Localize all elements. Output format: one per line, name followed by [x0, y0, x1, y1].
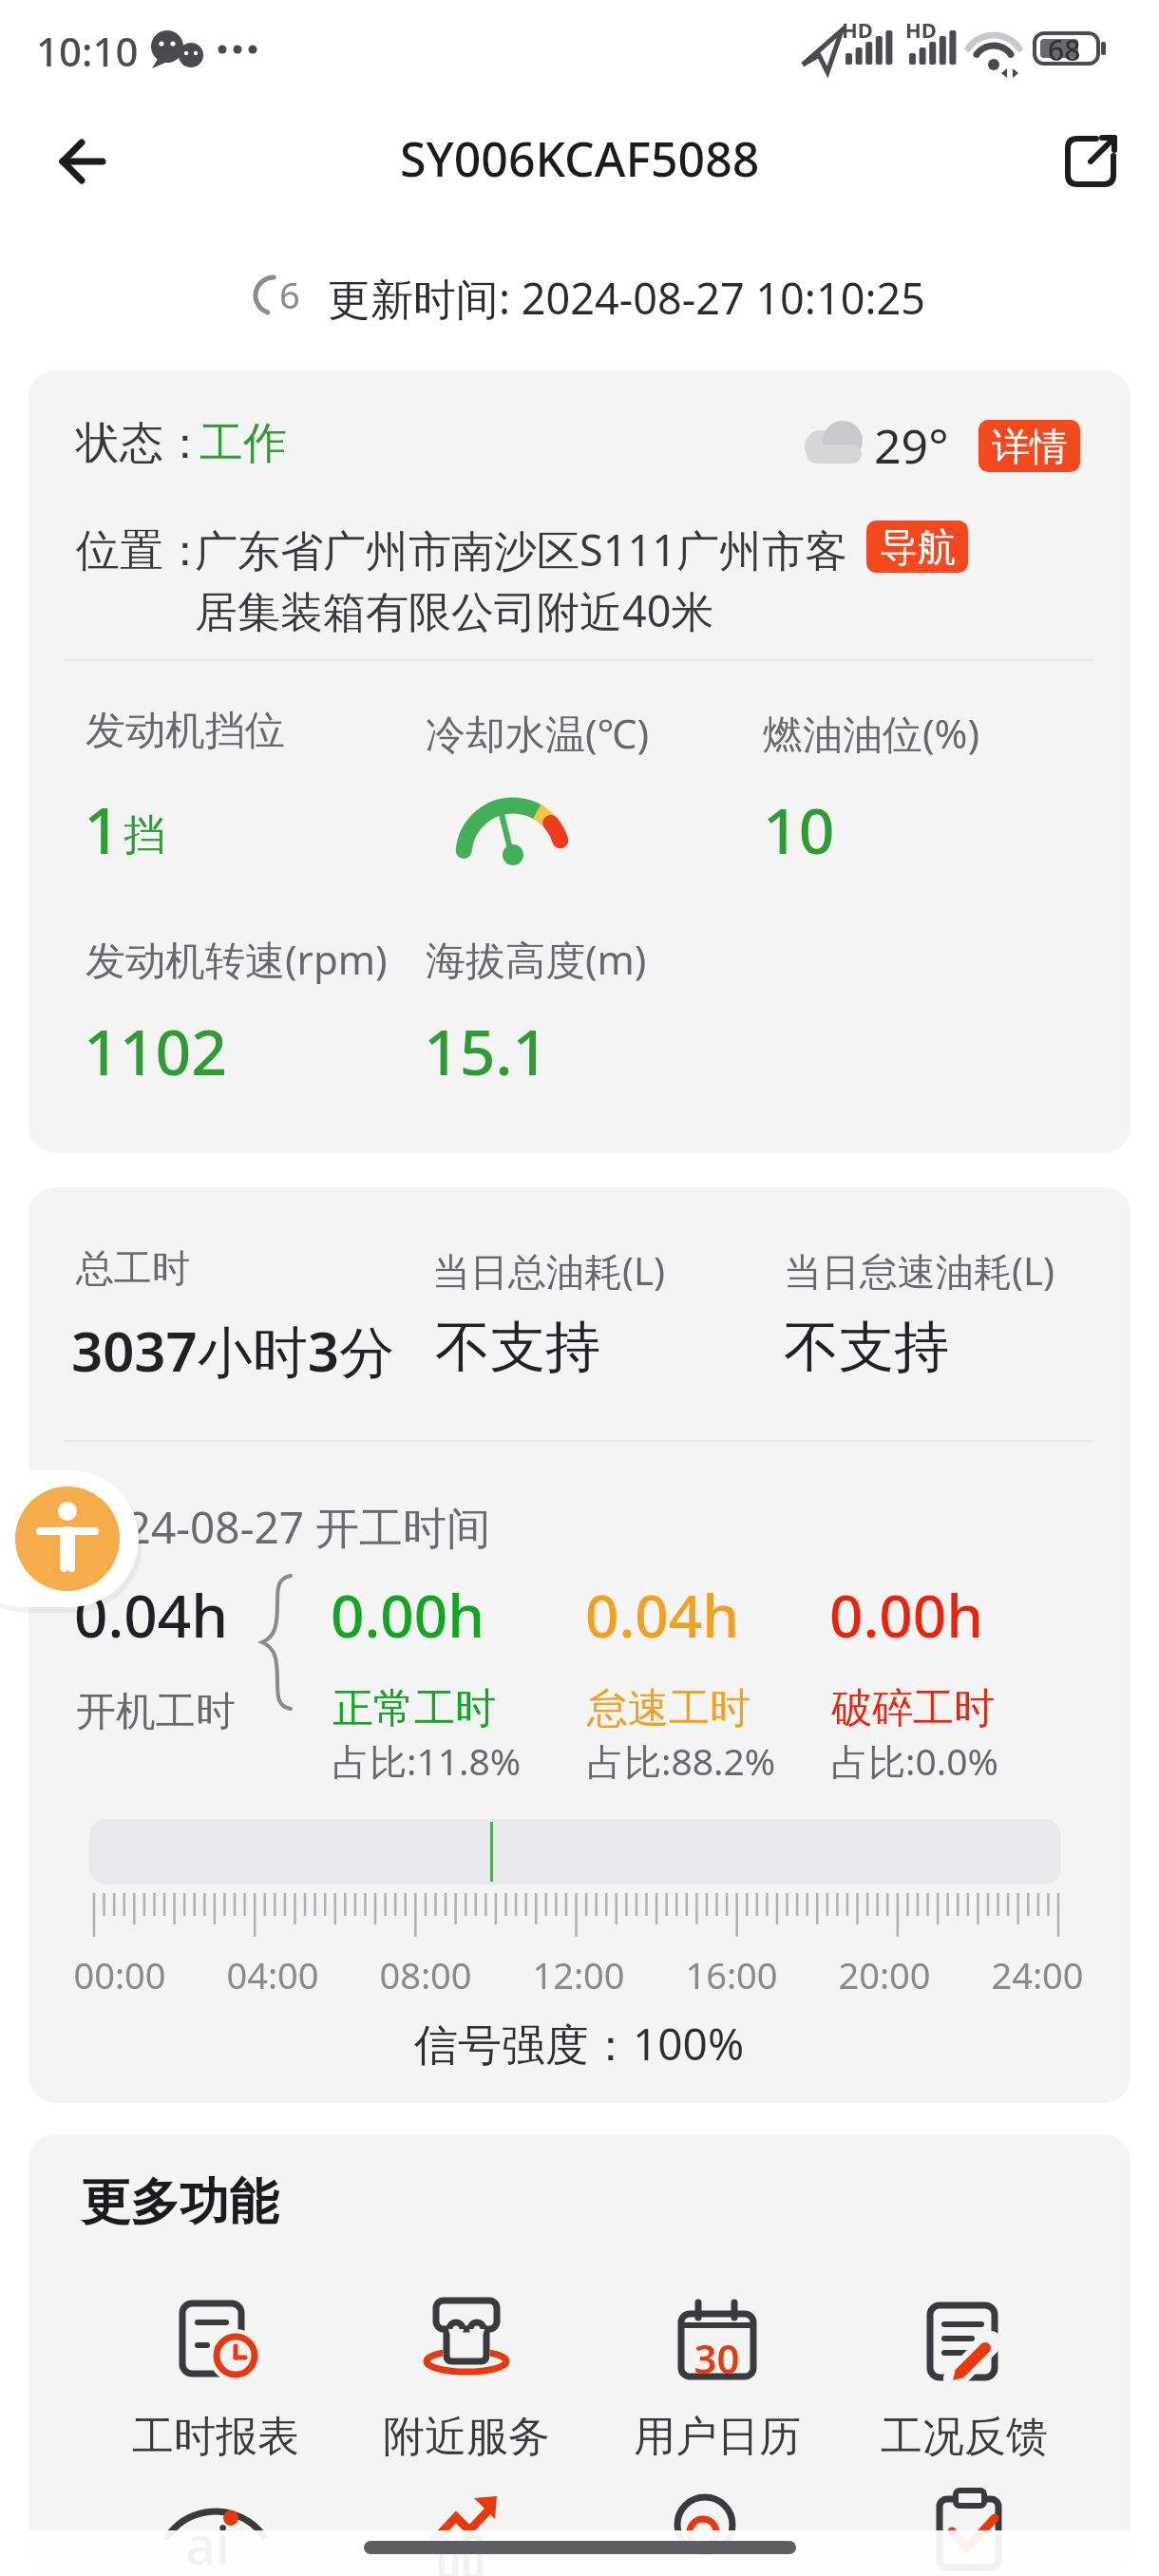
staticText: 30 [693, 2331, 740, 2385]
staticText: 6 [279, 270, 300, 319]
button[interactable] [1062, 131, 1123, 192]
staticText: 居集装箱有限公司附近40米 [195, 581, 714, 639]
staticText: 0.00h [829, 1575, 984, 1655]
button[interactable] [613, 2289, 822, 2470]
staticText: 详情 [992, 423, 1068, 470]
button[interactable]: 详情 [978, 420, 1080, 472]
staticText: 占比:88.2% [587, 1735, 776, 1786]
staticText: HD [905, 15, 937, 44]
staticText: 当日总油耗(L) [432, 1244, 665, 1297]
staticText: 24:00 [991, 1950, 1084, 1999]
staticText: 1 [84, 785, 121, 873]
staticText: 附近服务 [383, 2411, 550, 2463]
staticText: 不支持 [784, 1313, 949, 1382]
staticText: 工作 [199, 416, 287, 471]
staticText: 1102 [84, 1008, 228, 1093]
staticText: 信号强度：100% [414, 2014, 745, 2074]
staticText: 冷却水温(℃) [426, 706, 649, 760]
staticText: SY006KCAF5088 [400, 126, 760, 191]
staticText: 占比:0.0% [831, 1735, 998, 1786]
staticText: 总工时 [76, 1244, 190, 1292]
button[interactable] [111, 2289, 320, 2470]
staticText: 当日怠速油耗(L) [784, 1244, 1054, 1297]
staticText: 16:00 [685, 1950, 778, 1999]
staticText: 用户日历 [634, 2411, 801, 2463]
staticText: 更多功能 [81, 2171, 278, 2234]
button[interactable] [860, 2289, 1069, 2470]
staticText: ai [185, 2508, 231, 2576]
staticText: 怠速工时 [587, 1683, 750, 1734]
staticText: 发动机挡位 [85, 706, 285, 756]
staticText: 0.00h [331, 1575, 485, 1655]
staticText: 20:00 [838, 1950, 931, 1999]
staticText: 12:00 [532, 1950, 625, 1999]
staticText: 15.1 [424, 1008, 549, 1093]
staticText: 挡 [123, 809, 165, 862]
staticText: 更新时间: 2024-08-27 10:10:25 [328, 269, 925, 327]
button[interactable]: 导航 [866, 521, 968, 573]
button[interactable] [362, 2289, 571, 2470]
staticText: 3037小时3分 [71, 1313, 394, 1388]
staticText: 导航 [880, 523, 956, 571]
staticText: 04:00 [226, 1950, 319, 1999]
staticText: 发动机转速(rpm) [85, 932, 388, 986]
staticText: 广东省广州市南沙区S111广州市客 [195, 521, 847, 578]
staticText: 10 [763, 786, 835, 872]
staticText: HD [842, 15, 873, 44]
staticText: 0.04h [74, 1575, 229, 1655]
button[interactable] [15, 1487, 120, 1591]
staticText: 10:10 [36, 24, 139, 78]
staticText: 占比:11.8% [332, 1735, 522, 1786]
staticText: 68 [1048, 30, 1081, 69]
staticText: 破碎工时 [831, 1683, 995, 1734]
staticText: 状态： [76, 416, 207, 471]
staticText: 不支持 [435, 1313, 600, 1382]
staticText: 08:00 [379, 1950, 472, 1999]
staticText: 29° [874, 413, 949, 478]
staticText: 开机工时 [76, 1687, 236, 1737]
staticText: 海拔高度(m) [426, 932, 647, 986]
staticText: 工时报表 [132, 2411, 299, 2463]
staticText: 正常工时 [332, 1683, 496, 1734]
staticText: 位置： [76, 523, 207, 578]
staticText: 工况反馈 [881, 2411, 1048, 2463]
staticText: 0.04h [585, 1575, 740, 1655]
staticText: 00:00 [73, 1950, 166, 1999]
staticText: 2024-08-27 开工时间 [76, 1497, 491, 1557]
staticText: 燃油油位(%) [763, 706, 980, 760]
button[interactable] [55, 135, 108, 188]
